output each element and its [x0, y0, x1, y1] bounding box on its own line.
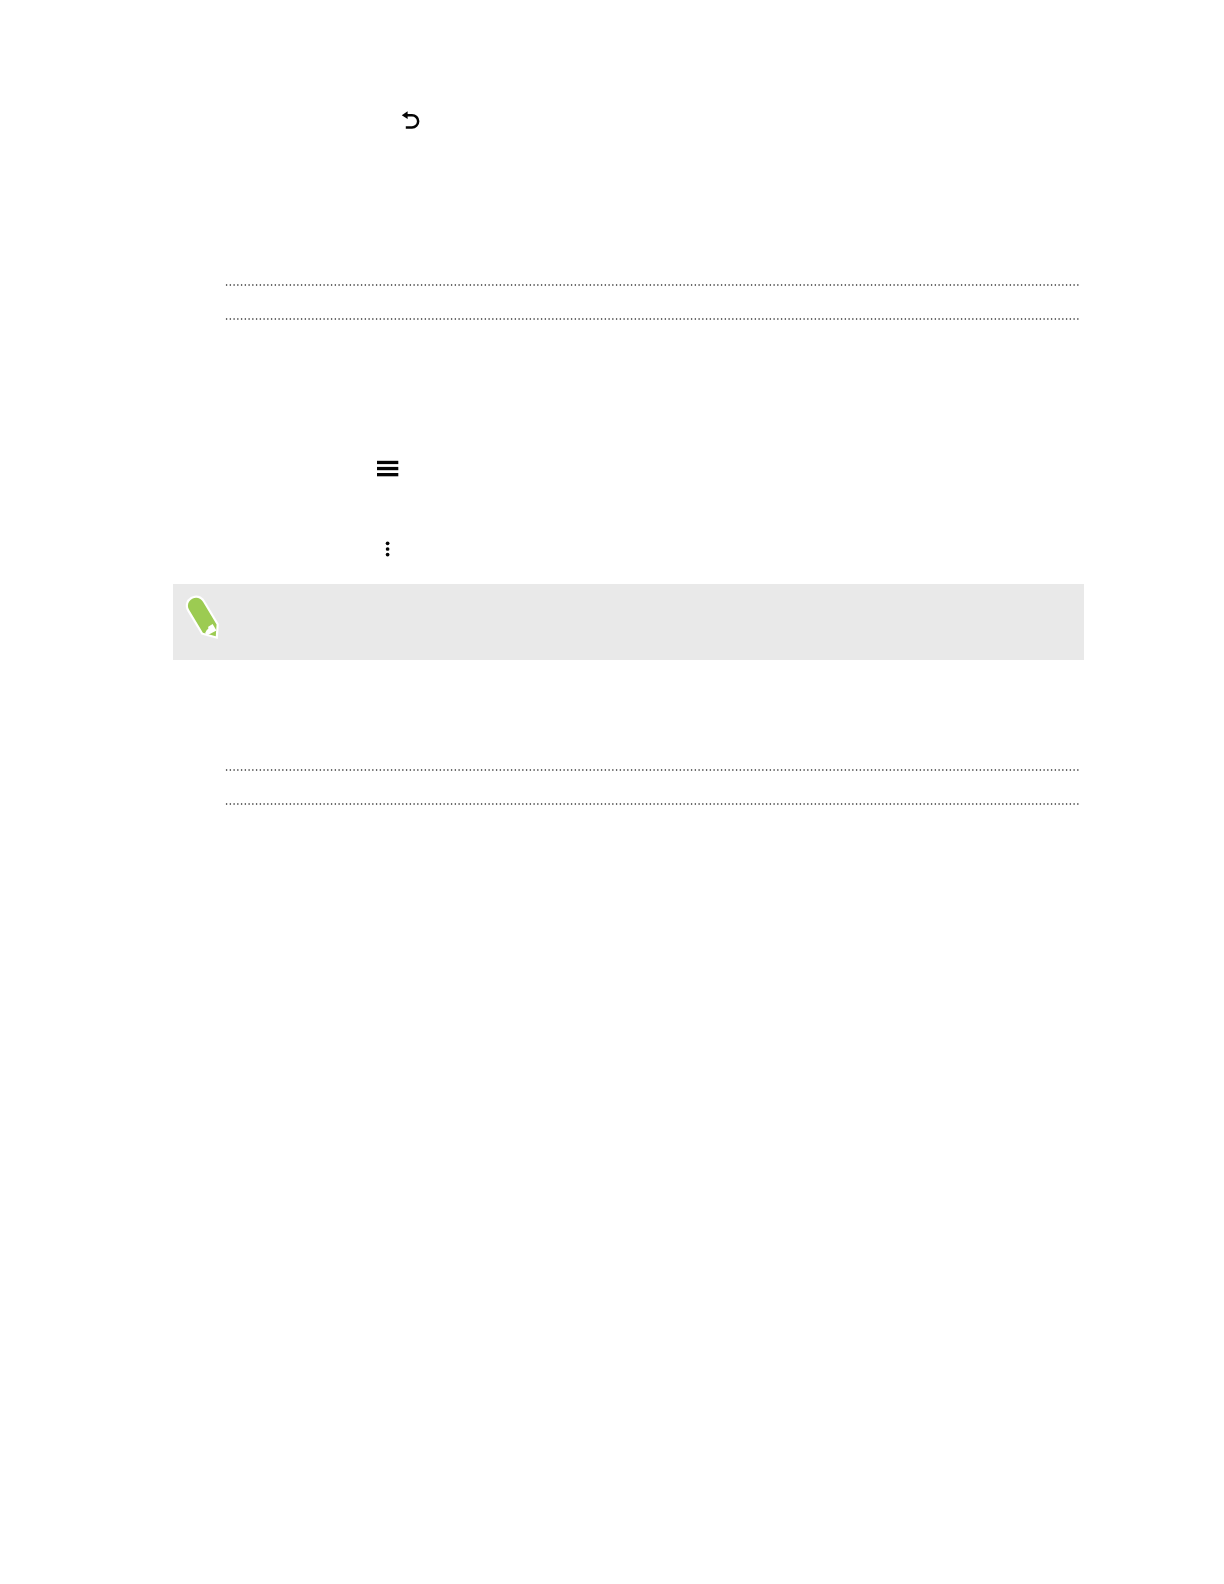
button[interactable]: Menu [371, 455, 404, 483]
button[interactable] [173, 584, 1084, 660]
button[interactable]: Undo [398, 108, 424, 134]
button[interactable]: More options [378, 534, 398, 562]
